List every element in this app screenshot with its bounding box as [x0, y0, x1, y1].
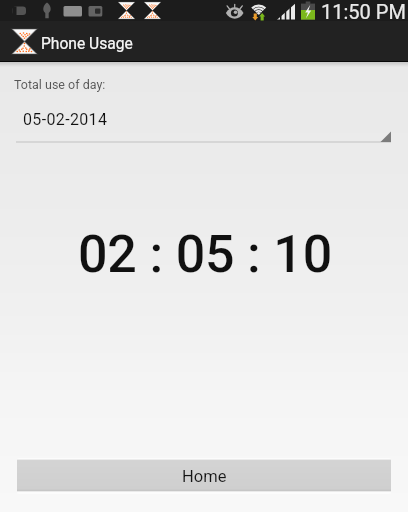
- button[interactable]: Home: [17, 458, 391, 494]
- staticText: 05-02-2014: [23, 110, 108, 129]
- staticText: 02 : 05 : 10: [1, 224, 408, 285]
- staticText: Phone Usage: [41, 35, 133, 53]
- staticText: Total use of day:: [14, 77, 106, 92]
- staticText: Home: [182, 467, 227, 486]
- staticText: 11:50 PM: [321, 0, 406, 21]
- button[interactable]: Select date: [0, 102, 408, 150]
